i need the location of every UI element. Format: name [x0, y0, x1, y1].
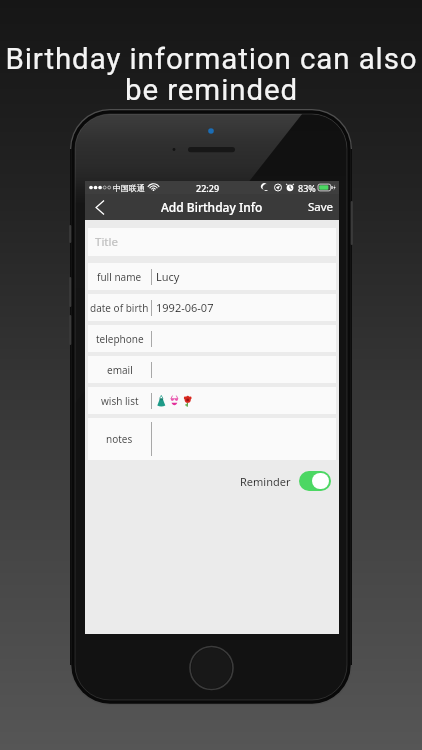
staticText: Save	[308, 199, 334, 215]
staticText: date of birth	[90, 301, 149, 315]
staticText: Lucy	[156, 269, 180, 284]
button[interactable]: Save	[308, 194, 334, 220]
staticText: wish list	[101, 394, 139, 408]
staticText: Title	[95, 234, 118, 250]
button[interactable]: telephone	[88, 325, 336, 352]
button[interactable]: email	[88, 356, 336, 383]
staticText: email	[107, 363, 133, 377]
button[interactable]: Title	[88, 228, 336, 256]
button[interactable]: date of birth	[88, 294, 336, 321]
button[interactable]: Reminder toggle	[299, 471, 331, 491]
staticText: 83%	[298, 182, 316, 194]
staticText: notes	[106, 432, 133, 446]
staticText: 中国联通	[113, 183, 145, 193]
staticText: Reminder	[240, 474, 291, 489]
staticText: 1992-06-07	[156, 300, 214, 315]
button[interactable]: notes	[88, 418, 336, 460]
staticText: full name	[97, 270, 142, 284]
staticText: 22:29	[196, 182, 220, 194]
button[interactable]: wish list	[88, 387, 336, 414]
button[interactable]: Back	[85, 194, 115, 220]
staticText: Add Birthday Info	[161, 199, 263, 215]
button[interactable]: full name	[88, 263, 336, 290]
staticText: Birthday information can also be reminde…	[5, 42, 418, 107]
staticText: telephone	[96, 332, 144, 346]
